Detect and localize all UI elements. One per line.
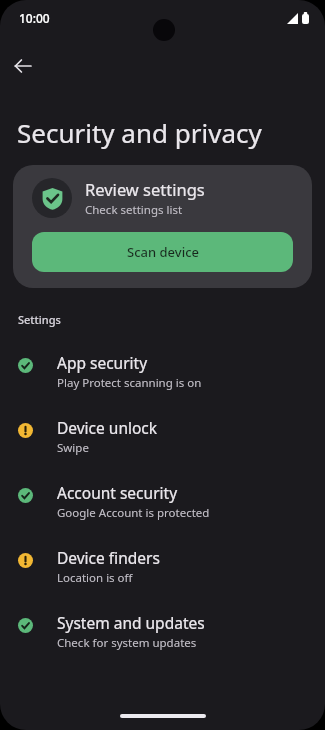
staticText: Check settings list xyxy=(85,202,183,218)
staticText: Play Protect scanning is on xyxy=(57,375,202,391)
button[interactable]: Back xyxy=(5,48,41,84)
staticText: Google Account is protected xyxy=(57,505,210,521)
staticText: Security and privacy xyxy=(17,115,262,150)
staticText: Location is off xyxy=(57,570,133,586)
staticText: Swipe xyxy=(57,440,89,456)
staticText: Settings xyxy=(18,312,61,327)
staticText: 10:00 xyxy=(19,10,50,26)
staticText: Scan device xyxy=(127,243,199,261)
staticText: App security xyxy=(57,352,148,373)
button[interactable]: Device unlock xyxy=(0,417,325,482)
staticText: Account security xyxy=(57,482,178,503)
button[interactable]: System and updates xyxy=(0,612,325,677)
staticText: Device unlock xyxy=(57,417,158,438)
staticText: Device finders xyxy=(57,547,160,568)
staticText: System and updates xyxy=(57,612,205,633)
button[interactable]: Scan device xyxy=(32,232,293,272)
staticText: Check for system updates xyxy=(57,635,197,651)
button[interactable]: App security xyxy=(0,352,325,417)
staticText: Review settings xyxy=(85,178,205,200)
button[interactable]: Device finders xyxy=(0,547,325,612)
button[interactable]: Review settings xyxy=(13,165,312,288)
button[interactable]: Account security xyxy=(0,482,325,547)
